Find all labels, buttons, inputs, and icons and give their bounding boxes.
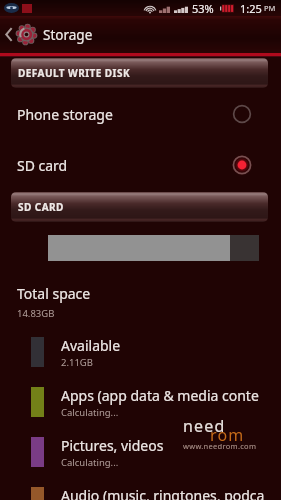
staticText: PM (264, 3, 276, 13)
button[interactable]: Available (0, 329, 281, 375)
other: Navigate up (4, 26, 13, 43)
staticText: 53% (192, 1, 214, 16)
staticText: 2.11GB (61, 356, 93, 369)
staticText: SD CARD (18, 200, 64, 214)
staticText: Available (61, 336, 121, 355)
staticText: 14.83GB (17, 307, 55, 320)
staticText: Audio (music, ringtones, podca (61, 486, 265, 500)
staticText: www.needrom.com (183, 441, 257, 451)
staticText: rom (210, 424, 245, 446)
button[interactable]: SD CARD (11, 192, 268, 222)
staticText: 1:25 (240, 1, 262, 16)
button[interactable]: Apps (app data & media conte (0, 379, 281, 425)
staticText: need (183, 415, 226, 437)
button[interactable]: DEFAULT WRITE DISK (11, 58, 268, 88)
button[interactable]: SD card (0, 140, 281, 190)
staticText: Apps (app data & media conte (61, 386, 259, 405)
staticText: SD card (17, 156, 68, 175)
staticText: Pictures, videos (61, 436, 164, 455)
staticText: Calculating... (61, 406, 119, 419)
staticText: Calculating... (61, 456, 119, 469)
button[interactable]: Pictures, videos (0, 429, 281, 475)
button[interactable]: Phone storage (0, 89, 281, 139)
staticText: Storage (43, 26, 93, 44)
staticText: Total space (17, 284, 91, 303)
staticText: Phone storage (17, 105, 113, 124)
staticText: DEFAULT WRITE DISK (18, 66, 130, 80)
button[interactable]: Audio (music, ringtones, podca (0, 479, 281, 500)
button[interactable]: Navigate up (0, 16, 281, 53)
